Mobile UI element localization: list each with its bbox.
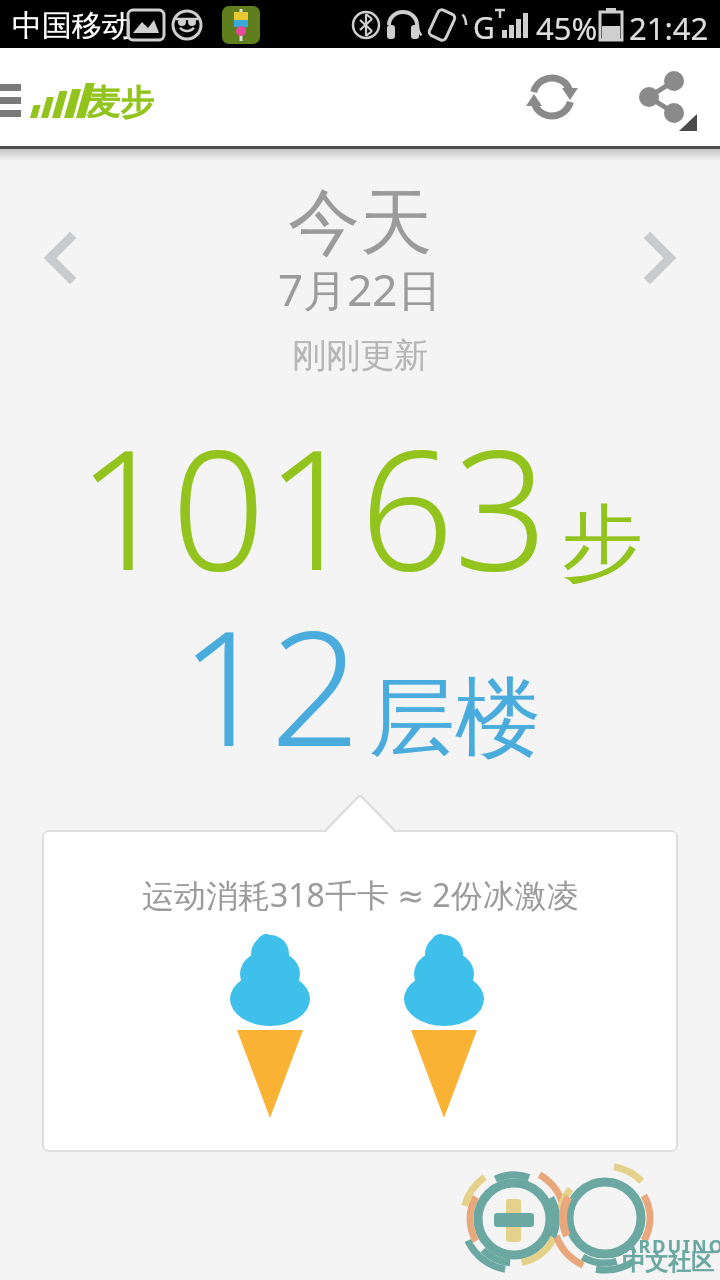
button[interactable]: 运动消耗318千卡 ≈ 2份冰激凌 bbox=[42, 830, 678, 1152]
staticText: 中国移动 bbox=[12, 7, 132, 45]
staticText: 刚刚更新 bbox=[292, 334, 428, 377]
staticText: 45% bbox=[536, 7, 598, 49]
staticText: 12 bbox=[180, 577, 361, 792]
staticText: G bbox=[473, 7, 495, 48]
button[interactable] bbox=[34, 228, 86, 288]
button[interactable] bbox=[518, 78, 586, 134]
staticText: 层楼 bbox=[369, 664, 541, 772]
staticText: 21:42 bbox=[629, 7, 709, 49]
staticText: 10163 bbox=[77, 394, 549, 619]
staticText: 7月22日 bbox=[278, 259, 442, 319]
button[interactable] bbox=[628, 74, 700, 138]
staticText: ARDUINO bbox=[624, 1234, 720, 1259]
staticText: 运动消耗318千卡 ≈ 2份冰激凌 bbox=[142, 873, 579, 917]
staticText: 今天 bbox=[288, 178, 432, 269]
button[interactable] bbox=[0, 78, 28, 124]
staticText: 步 bbox=[561, 492, 643, 595]
button[interactable] bbox=[634, 228, 686, 288]
staticText: 中文社区 bbox=[622, 1248, 714, 1277]
staticText: 麦步 bbox=[86, 81, 154, 124]
